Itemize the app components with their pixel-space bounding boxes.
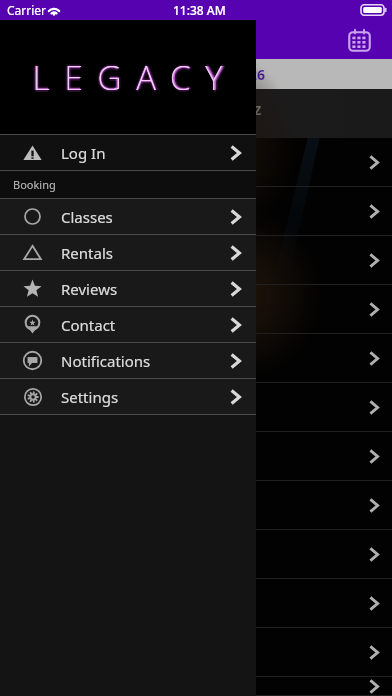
button[interactable]: Contact — [0, 307, 256, 342]
button[interactable]: Notifications — [0, 343, 256, 378]
staticText: Classes — [61, 207, 113, 227]
button[interactable]: Rentals — [0, 235, 256, 270]
staticText: LEGACY — [34, 55, 241, 100]
staticText: LEGACY — [31, 55, 238, 100]
button[interactable]: List item — [0, 187, 392, 236]
button[interactable]: Calendar — [344, 25, 374, 55]
button[interactable]: Log In — [0, 135, 256, 170]
staticText: LEGACY — [32, 55, 239, 100]
button[interactable]: List item — [0, 236, 392, 285]
button[interactable]: List item — [0, 481, 392, 530]
staticText: Settings — [61, 387, 119, 407]
staticText: Booking — [13, 177, 56, 192]
button[interactable]: List item — [0, 383, 392, 432]
staticText: LEGACY — [33, 55, 237, 100]
staticText: 26 — [249, 65, 266, 84]
button[interactable]: List item — [0, 530, 392, 579]
button[interactable]: List item — [0, 579, 392, 628]
staticText: JAZZ — [235, 102, 262, 118]
staticText: LEGACY — [30, 55, 237, 100]
staticText: LEGACY — [31, 55, 238, 100]
staticText: Log In — [61, 143, 106, 163]
button[interactable]: List item — [0, 628, 392, 677]
staticText: Notifications — [61, 351, 151, 371]
staticText: 11:38 AM — [173, 2, 226, 18]
button[interactable]: List item — [0, 285, 392, 334]
staticText: LEGACY — [32, 54, 239, 99]
staticText: LEGACY — [32, 54, 239, 99]
button[interactable]: Reviews — [0, 271, 256, 306]
button[interactable]: Settings — [0, 379, 256, 414]
button[interactable]: List item — [0, 334, 392, 383]
staticText: Reviews — [61, 279, 118, 299]
staticText: LEGACY — [33, 55, 240, 100]
button[interactable]: Classes — [0, 199, 256, 234]
staticText: Contact — [61, 315, 116, 335]
staticText: LEGACY — [32, 56, 239, 101]
button[interactable]: List item — [0, 432, 392, 481]
staticText: Rentals — [61, 243, 113, 263]
staticText: LEGACY — [32, 53, 239, 98]
staticText: LEGACY — [32, 57, 239, 102]
staticText: LEGACY — [32, 57, 239, 102]
staticText: LEGACY — [34, 55, 241, 100]
staticText: Carrier — [7, 2, 47, 18]
button[interactable]: List item — [0, 138, 392, 187]
button[interactable]: List item — [0, 677, 392, 696]
